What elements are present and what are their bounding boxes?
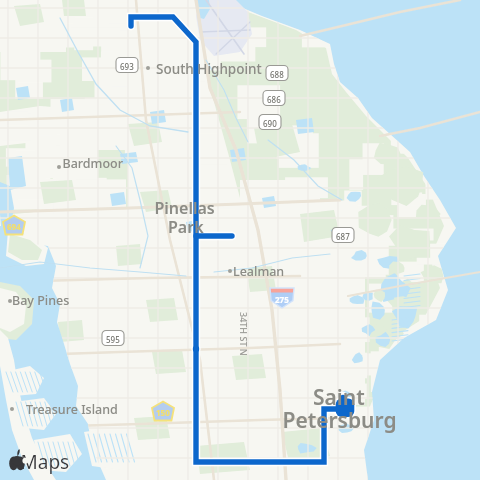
button[interactable]: Map of Pinellas County showing transit r… [0,0,480,480]
button[interactable]: Apple Maps [8,448,70,472]
